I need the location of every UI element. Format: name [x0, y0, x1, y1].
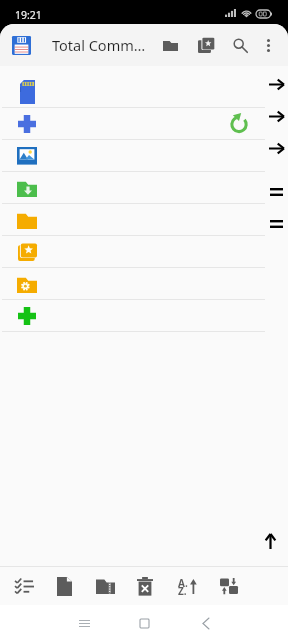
button[interactable] [0, 204, 288, 236]
button[interactable]: Bookmarks [190, 29, 222, 61]
button[interactable]: Delete [128, 569, 162, 603]
button[interactable]: New file [47, 569, 81, 603]
button[interactable]: Swap panels [212, 569, 246, 603]
button[interactable]: Sort A to Z [170, 569, 204, 603]
button[interactable]: Select files [7, 569, 41, 603]
button[interactable]: Back [194, 611, 218, 635]
button[interactable]: Go up [257, 528, 283, 554]
staticText: Total Comm… [52, 35, 146, 55]
button[interactable]: Open folder [154, 29, 186, 61]
button[interactable]: Home folder [6, 30, 36, 60]
staticText: 19:21 [15, 8, 42, 22]
button[interactable]: Zip folder [88, 569, 122, 603]
button[interactable] [0, 76, 288, 108]
button[interactable] [0, 300, 288, 332]
staticText: A. [178, 576, 188, 590]
button[interactable] [0, 108, 288, 140]
button[interactable]: Search [224, 29, 256, 61]
staticText: Z. [178, 584, 187, 598]
button[interactable]: Recent apps [72, 611, 96, 635]
button[interactable]: More options [252, 29, 284, 61]
button[interactable]: Home [132, 611, 156, 635]
button[interactable] [0, 236, 288, 268]
button[interactable] [0, 268, 288, 300]
button[interactable] [0, 172, 288, 204]
button[interactable] [0, 140, 288, 172]
